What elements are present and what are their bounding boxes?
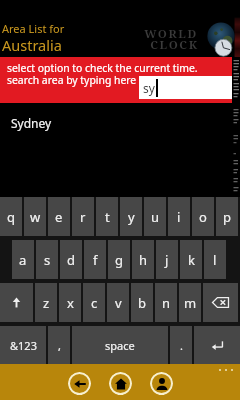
- button[interactable]: n: [155, 283, 177, 322]
- button[interactable]: q: [0, 197, 22, 236]
- staticText: m: [184, 294, 197, 312]
- staticText: Australia: [2, 35, 62, 55]
- button[interactable]: w: [24, 197, 46, 236]
- staticText: search area by typing here: [7, 73, 137, 87]
- button[interactable]: b: [131, 283, 153, 322]
- staticText: y: [128, 208, 135, 226]
- button[interactable]: Backspace: [203, 283, 238, 322]
- button[interactable]: z: [35, 283, 57, 322]
- button[interactable]: sy: [139, 76, 232, 99]
- staticText: t: [105, 208, 110, 226]
- button[interactable]: v: [107, 283, 129, 322]
- staticText: v: [115, 294, 122, 312]
- button[interactable]: j: [156, 240, 178, 279]
- button[interactable]: m: [179, 283, 201, 322]
- button[interactable]: &123: [0, 326, 46, 364]
- button[interactable]: a: [12, 240, 34, 279]
- button[interactable]: Contacts: [150, 372, 173, 395]
- staticText: Area List for: [2, 21, 65, 36]
- button[interactable]: i: [168, 197, 190, 236]
- staticText: l: [213, 251, 217, 269]
- button[interactable]: p: [216, 197, 238, 236]
- staticText: x: [67, 294, 74, 312]
- button[interactable]: e: [48, 197, 70, 236]
- button[interactable]: d: [60, 240, 82, 279]
- button[interactable]: ,: [48, 326, 70, 364]
- button[interactable]: g: [108, 240, 130, 279]
- button[interactable]: Back: [68, 372, 91, 395]
- button[interactable]: c: [83, 283, 105, 322]
- staticText: z: [43, 294, 50, 312]
- button[interactable]: Enter: [194, 326, 240, 364]
- staticText: s: [44, 251, 51, 269]
- staticText: d: [67, 251, 75, 269]
- staticText: q: [7, 208, 15, 226]
- staticText: WORLD: [144, 26, 198, 42]
- button[interactable]: Home: [109, 372, 132, 395]
- button[interactable]: k: [180, 240, 202, 279]
- button[interactable]: t: [96, 197, 118, 236]
- staticText: a: [19, 251, 27, 269]
- button[interactable]: u: [144, 197, 166, 236]
- staticText: CLOCK: [150, 37, 199, 53]
- staticText: e: [55, 208, 63, 226]
- staticText: w: [30, 208, 41, 226]
- button[interactable]: o: [192, 197, 214, 236]
- staticText: i: [177, 208, 181, 226]
- staticText: k: [188, 251, 195, 269]
- staticText: space: [105, 338, 135, 353]
- button[interactable]: .: [170, 326, 192, 364]
- staticText: j: [165, 251, 169, 269]
- staticText: u: [151, 208, 160, 226]
- staticText: select option to check the current time.: [7, 61, 198, 75]
- staticText: g: [115, 251, 123, 269]
- button[interactable]: Shift: [0, 283, 33, 322]
- staticText: n: [162, 294, 171, 312]
- button[interactable]: y: [120, 197, 142, 236]
- staticText: ,: [58, 338, 61, 353]
- staticText: b: [138, 294, 146, 312]
- staticText: Sydney: [11, 115, 52, 131]
- staticText: sy: [143, 80, 155, 96]
- button[interactable]: x: [59, 283, 81, 322]
- staticText: r: [80, 208, 86, 226]
- staticText: .: [180, 338, 183, 353]
- staticText: o: [199, 208, 207, 226]
- button[interactable]: f: [84, 240, 106, 279]
- button[interactable]: h: [132, 240, 154, 279]
- button[interactable]: r: [72, 197, 94, 236]
- staticText: h: [139, 251, 148, 269]
- button[interactable]: s: [36, 240, 58, 279]
- staticText: f: [93, 251, 98, 269]
- button[interactable]: Sydney: [0, 112, 240, 134]
- staticText: p: [223, 208, 231, 226]
- staticText: c: [91, 294, 98, 312]
- staticText: &123: [10, 338, 37, 353]
- button[interactable]: space: [72, 326, 168, 364]
- button[interactable]: l: [204, 240, 226, 279]
